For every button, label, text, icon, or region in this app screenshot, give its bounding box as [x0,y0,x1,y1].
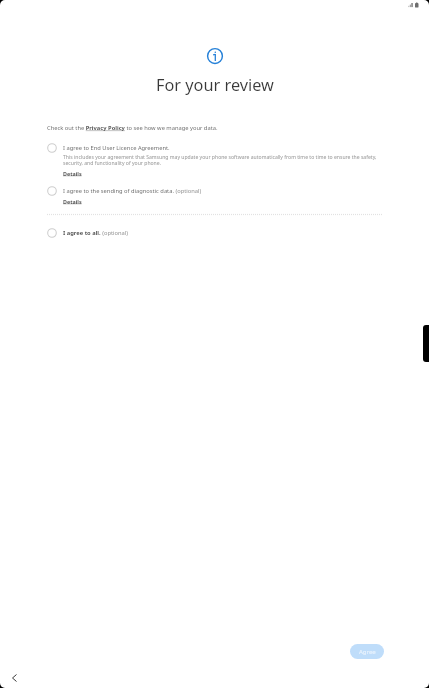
staticText: I agree to the sending of diagnostic dat… [63,187,202,195]
button[interactable]: I agree to all. (optional) [47,229,383,239]
button[interactable]: Back [6,670,22,686]
staticText: I agree to all. (optional) [63,229,128,237]
button[interactable]: Details [63,170,82,177]
staticText: Check out the Privacy Policy to see how … [47,124,218,132]
button[interactable]: Agree [350,644,384,659]
button[interactable]: I agree to the sending of diagnostic dat… [47,187,383,205]
staticText: Agree [359,648,376,656]
staticText: I agree to End User Licence Agreement. [63,144,170,152]
button[interactable]: Details [63,198,82,205]
staticText: This includes your agreement that Samsun… [63,154,383,167]
staticText: For your review [156,74,274,96]
button[interactable]: I agree to End User Licence Agreement. [47,144,383,177]
